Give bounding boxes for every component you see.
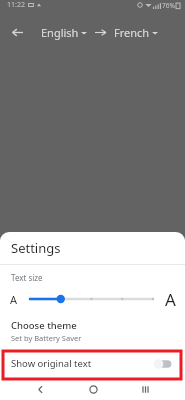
button[interactable]: French (112, 23, 160, 42)
staticText: Show original text (11, 357, 92, 370)
button[interactable]: Show original text (0, 351, 185, 376)
button[interactable]: Recent apps (132, 379, 158, 400)
staticText: A (10, 292, 18, 307)
staticText: Set by Battery Saver (11, 333, 82, 343)
button[interactable]: Home (80, 379, 106, 400)
staticText: 76% (162, 1, 175, 10)
button[interactable]: Back (6, 21, 28, 43)
staticText: A (165, 288, 176, 311)
staticText: Text size (11, 272, 43, 283)
staticText: Settings (11, 239, 61, 257)
staticText: French (114, 25, 150, 40)
staticText: Choose theme (11, 319, 77, 332)
button[interactable]: A (0, 287, 185, 311)
staticText: 11:22 (7, 0, 25, 10)
button[interactable]: English (39, 23, 89, 42)
staticText: English (41, 25, 79, 40)
button[interactable]: Choose theme (0, 317, 185, 347)
button[interactable]: Back (27, 379, 53, 400)
